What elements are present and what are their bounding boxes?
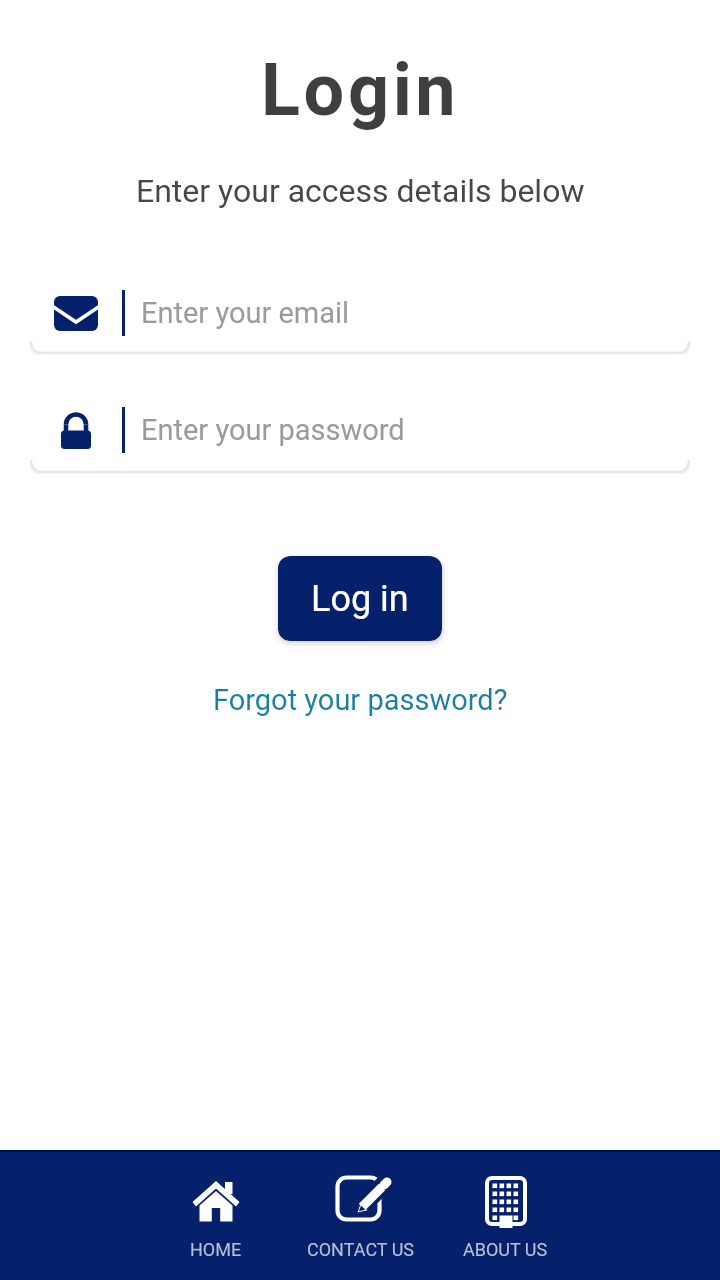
staticText: HOME [190, 1239, 242, 1260]
button[interactable]: HOME [143, 1176, 288, 1260]
staticText: CONTACT US [307, 1239, 415, 1260]
button[interactable]: CONTACT US [288, 1176, 433, 1260]
button[interactable]: Log in [278, 556, 442, 641]
staticText: ABOUT US [463, 1239, 548, 1260]
button[interactable]: ABOUT US [433, 1176, 578, 1260]
staticText: Log in [311, 578, 409, 620]
staticText: Enter your access details below [136, 172, 585, 210]
staticText: Login [261, 48, 460, 132]
button[interactable]: Enter your password [30, 404, 690, 456]
button[interactable]: Enter your email [30, 287, 690, 339]
button[interactable]: Forgot your password? [213, 683, 508, 717]
staticText: Enter your email [141, 296, 350, 330]
staticText: Enter your password [141, 413, 405, 447]
